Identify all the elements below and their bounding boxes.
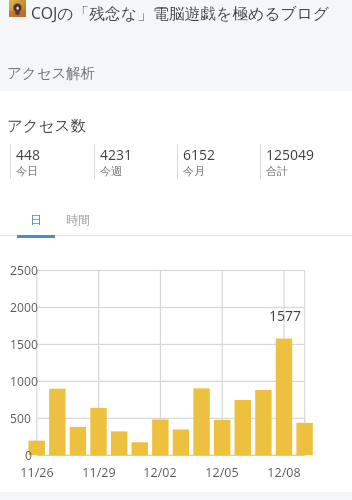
staticText: アクセス解析 xyxy=(7,64,96,82)
staticText: アクセス数 xyxy=(7,116,86,136)
staticText: 日 xyxy=(30,212,42,227)
staticText: 1577 xyxy=(255,306,315,325)
button[interactable]: 時間 xyxy=(54,205,101,234)
staticText: 1500 xyxy=(10,336,38,353)
staticText: 125049 xyxy=(266,145,315,164)
staticText: 448 xyxy=(16,145,41,164)
staticText: 今月 xyxy=(183,164,205,178)
button[interactable]: 448 xyxy=(10,144,94,179)
staticText: 時間 xyxy=(66,212,90,227)
staticText: 11/26 xyxy=(7,464,67,481)
staticText: 1000 xyxy=(10,373,38,390)
staticText: 2500 xyxy=(10,262,38,279)
button[interactable]: 6152 xyxy=(177,144,260,179)
staticText: 500 xyxy=(10,410,31,427)
staticText: 12/08 xyxy=(254,464,314,481)
button[interactable]: 125049 xyxy=(260,144,343,179)
staticText: 2000 xyxy=(10,299,38,316)
staticText: 0 xyxy=(25,447,32,464)
staticText: 11/29 xyxy=(69,464,129,481)
staticText: 12/02 xyxy=(130,464,190,481)
staticText: 今日 xyxy=(16,164,38,178)
button[interactable]: Blog icon xyxy=(0,0,352,24)
staticText: 4231 xyxy=(100,145,133,164)
staticText: 合計 xyxy=(266,164,288,178)
button[interactable]: 日 xyxy=(17,205,55,234)
staticText: 6152 xyxy=(183,145,216,164)
staticText: 12/05 xyxy=(192,464,252,481)
button[interactable]: 4231 xyxy=(94,144,177,179)
other: Blog icon xyxy=(9,0,26,17)
staticText: 今週 xyxy=(100,164,122,178)
staticText: COJの「残念な」電脳遊戯を極めるブログ xyxy=(31,2,329,24)
